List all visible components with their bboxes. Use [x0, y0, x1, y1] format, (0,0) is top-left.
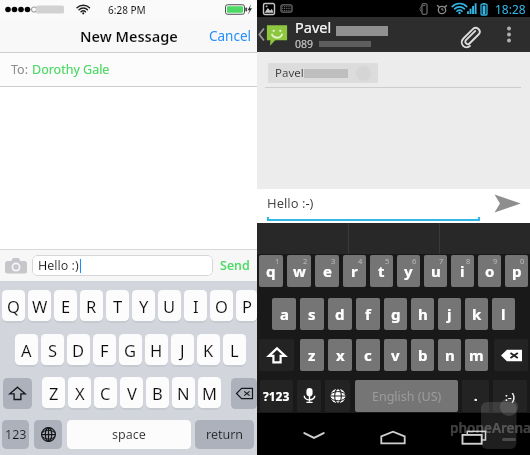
- button[interactable]: 123: [2, 420, 29, 449]
- button[interactable]: A: [15, 334, 38, 367]
- button[interactable]: x: [328, 339, 352, 371]
- staticText: 1: [275, 256, 280, 266]
- button[interactable]: t: [370, 255, 393, 287]
- button[interactable]: Hello :): [32, 255, 213, 276]
- button[interactable]: Hello :-): [267, 189, 480, 223]
- staticText: b: [418, 345, 428, 365]
- button[interactable]: P: [236, 290, 257, 323]
- button[interactable]: g: [384, 298, 407, 330]
- button[interactable]: X: [68, 377, 91, 410]
- button[interactable]: e: [315, 255, 339, 287]
- button[interactable]: Send: [218, 257, 252, 274]
- button[interactable]: o: [478, 255, 501, 287]
- staticText: B: [152, 382, 163, 404]
- button[interactable]: F: [93, 334, 116, 367]
- staticText: 089: [295, 37, 314, 51]
- button[interactable]: N: [172, 377, 195, 410]
- button[interactable]: R: [80, 290, 103, 323]
- button[interactable]: i: [451, 255, 474, 287]
- staticText: English (US): [372, 388, 442, 405]
- staticText: To:: [11, 61, 32, 78]
- button[interactable]: ?123: [260, 380, 293, 412]
- staticText: h: [418, 304, 428, 324]
- button[interactable]: m: [465, 339, 488, 371]
- button[interactable]: Send: [488, 188, 526, 218]
- button[interactable]: j: [438, 298, 461, 330]
- staticText: S: [48, 339, 58, 361]
- button[interactable]: K: [197, 334, 220, 367]
- staticText: t: [378, 261, 385, 281]
- button[interactable]: S: [41, 334, 64, 367]
- button[interactable]: G: [119, 334, 142, 367]
- button[interactable]: Z: [42, 377, 65, 410]
- button[interactable]: Cancel: [204, 20, 257, 52]
- button[interactable]: Attach: [450, 17, 488, 52]
- button[interactable]: Y: [132, 290, 155, 323]
- button[interactable]: .: [462, 380, 489, 412]
- staticText: L: [230, 339, 239, 361]
- button[interactable]: English (US): [355, 380, 458, 412]
- button[interactable]: Shift: [259, 339, 294, 371]
- button[interactable]: Home: [365, 419, 421, 451]
- button[interactable]: More options: [488, 17, 530, 52]
- button[interactable]: Change language: [325, 380, 350, 412]
- button[interactable]: d: [328, 298, 352, 330]
- staticText: Pavel: [295, 17, 332, 37]
- button[interactable]: O: [210, 290, 233, 323]
- button[interactable]: Back: [286, 419, 342, 451]
- staticText: 5: [385, 256, 390, 266]
- button[interactable]: Shift: [3, 378, 32, 409]
- button[interactable]: space: [67, 420, 191, 449]
- button[interactable]: u: [424, 255, 447, 287]
- button[interactable]: Voice input: [297, 380, 321, 412]
- button[interactable]: p: [505, 255, 528, 287]
- button[interactable]: I: [184, 290, 207, 323]
- button[interactable]: b: [411, 339, 434, 371]
- button[interactable]: r: [343, 255, 366, 287]
- button[interactable]: J: [171, 334, 194, 367]
- button[interactable]: return: [195, 420, 254, 449]
- button[interactable]: B: [146, 377, 169, 410]
- button[interactable]: l: [492, 298, 515, 330]
- button[interactable]: a: [272, 298, 296, 330]
- button[interactable]: L: [223, 334, 246, 367]
- button[interactable]: k: [465, 298, 488, 330]
- button[interactable]: Q: [2, 290, 25, 323]
- button[interactable]: f: [356, 298, 380, 330]
- button[interactable]: q: [259, 255, 283, 287]
- staticText: P: [242, 295, 252, 317]
- button[interactable]: z: [300, 339, 324, 371]
- button[interactable]: y: [397, 255, 420, 287]
- staticText: R: [86, 295, 97, 317]
- button[interactable]: Camera: [5, 257, 27, 275]
- button[interactable]: v: [384, 339, 407, 371]
- staticText: O: [215, 295, 228, 317]
- staticText: N: [177, 382, 190, 404]
- button[interactable]: To:: [0, 53, 257, 86]
- button[interactable]: c: [356, 339, 380, 371]
- button[interactable]: Change keyboard: [34, 420, 62, 449]
- button[interactable]: :-): [493, 380, 527, 412]
- button[interactable]: C: [94, 377, 117, 410]
- button[interactable]: Pavel: [268, 63, 378, 83]
- button[interactable]: w: [287, 255, 311, 287]
- button[interactable]: M: [198, 377, 221, 410]
- button[interactable]: H: [145, 334, 168, 367]
- staticText: d: [335, 304, 345, 324]
- button[interactable]: s: [300, 298, 324, 330]
- button[interactable]: Recent apps: [446, 419, 502, 451]
- staticText: 0: [520, 256, 525, 266]
- staticText: Y: [139, 295, 149, 317]
- button[interactable]: Navigate up: [257, 17, 295, 52]
- staticText: Send: [220, 257, 250, 274]
- button[interactable]: U: [158, 290, 181, 323]
- button[interactable]: Backspace: [231, 378, 257, 409]
- button[interactable]: V: [120, 377, 143, 410]
- button[interactable]: n: [438, 339, 461, 371]
- button[interactable]: E: [54, 290, 77, 323]
- button[interactable]: Delete: [494, 339, 528, 371]
- button[interactable]: D: [67, 334, 90, 367]
- button[interactable]: W: [28, 290, 51, 323]
- button[interactable]: h: [411, 298, 434, 330]
- button[interactable]: T: [106, 290, 129, 323]
